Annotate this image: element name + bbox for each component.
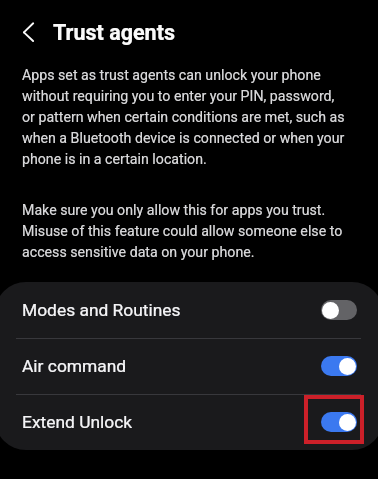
button[interactable]: Extend Unlock <box>321 412 357 432</box>
staticText: Apps set as trust agents can unlock your… <box>22 63 349 168</box>
staticText: Extend Unlock <box>22 412 133 432</box>
staticText: Trust agents <box>53 20 175 45</box>
button[interactable]: Air command <box>0 338 378 394</box>
staticText: Modes and Routines <box>22 300 181 320</box>
button[interactable]: Modes and Routines <box>0 282 378 338</box>
button[interactable]: Air command <box>321 356 357 376</box>
staticText: Air command <box>22 356 127 376</box>
button[interactable]: Extend Unlock <box>0 394 378 450</box>
button[interactable]: Back <box>15 19 38 42</box>
staticText: Make sure you only allow this for apps y… <box>22 198 349 261</box>
button[interactable]: Modes and Routines <box>321 300 357 320</box>
